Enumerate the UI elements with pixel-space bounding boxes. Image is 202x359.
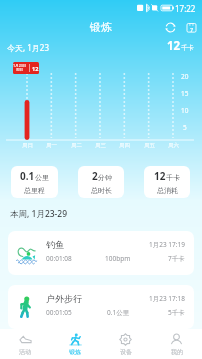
button[interactable]: Sync	[160, 17, 180, 37]
staticText: 1月23 17:18	[149, 294, 185, 303]
button[interactable]: 锻炼	[50, 330, 100, 359]
staticText: 锻炼	[90, 20, 112, 34]
staticText: 00:01:05	[46, 308, 72, 317]
staticText: 5	[183, 123, 187, 132]
staticText: 活动	[19, 348, 31, 356]
staticText: 1月23日	[13, 63, 27, 68]
staticText: 周五	[144, 142, 155, 149]
staticText: 千卡	[166, 173, 180, 182]
staticText: 设备	[120, 348, 132, 356]
button[interactable]: 户外步行	[8, 285, 194, 329]
button[interactable]: 2	[78, 166, 124, 198]
staticText: 7千卡	[168, 254, 185, 263]
staticText: 0.1公里	[107, 308, 130, 317]
staticText: 周日	[22, 142, 33, 149]
staticText: 总时长	[91, 186, 112, 195]
button[interactable]: 0.1	[11, 166, 58, 198]
staticText: 本周, 1月23-29	[10, 208, 68, 220]
button[interactable]: 钓鱼	[8, 231, 194, 275]
staticText: 20	[181, 72, 189, 81]
staticText: 周四	[119, 142, 130, 149]
staticText: 总消耗	[157, 186, 178, 195]
staticText: 总里程	[24, 186, 45, 195]
staticText: 15	[181, 89, 189, 98]
staticText: 12	[167, 38, 181, 54]
staticText: 00:01:08	[46, 254, 72, 263]
staticText: 锻炼	[69, 348, 81, 356]
button[interactable]: 我的	[151, 330, 202, 359]
staticText: 17:22	[175, 3, 196, 14]
staticText: 5千卡	[168, 308, 185, 317]
staticText: 钓鱼	[46, 239, 64, 250]
staticText: 12	[32, 65, 39, 72]
button[interactable]: 活动	[0, 330, 50, 359]
staticText: 2	[92, 169, 98, 183]
staticText: 周二	[71, 142, 82, 149]
staticText: 户外步行	[46, 293, 82, 304]
button[interactable]: 设备	[100, 330, 151, 359]
staticText: 周日	[16, 68, 24, 73]
button[interactable]: Calendar	[180, 16, 202, 38]
staticText: 公里	[35, 173, 49, 182]
staticText: 周一	[46, 142, 57, 149]
staticText: 1月23 17:19	[149, 240, 185, 249]
staticText: 我的	[171, 348, 183, 356]
staticText: 分钟	[98, 173, 112, 182]
staticText: 10	[181, 106, 189, 115]
staticText: 7	[190, 26, 194, 33]
button[interactable]: 12	[144, 166, 190, 198]
staticText: 周六	[168, 142, 179, 149]
staticText: 0.1	[20, 169, 35, 183]
staticText: 千卡	[181, 44, 194, 52]
staticText: 12	[154, 169, 166, 183]
staticText: 周三	[95, 142, 106, 149]
staticText: 今天, 1月23	[7, 42, 49, 53]
staticText: 100bpm	[105, 254, 131, 263]
